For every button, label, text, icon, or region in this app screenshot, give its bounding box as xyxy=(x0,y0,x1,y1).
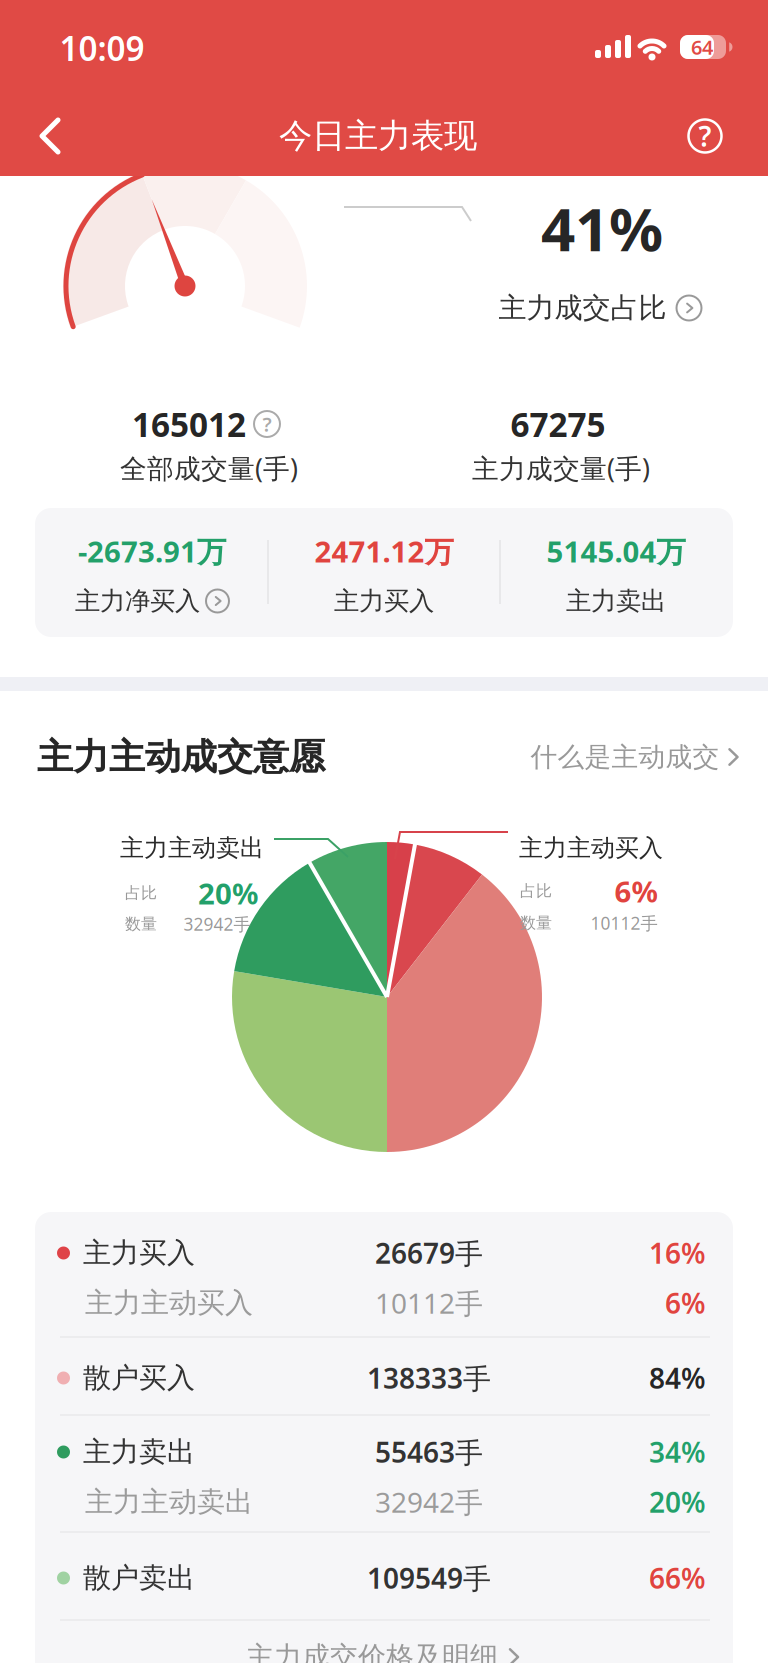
staticText: 32942手 xyxy=(375,1483,483,1521)
staticText: 主力主动卖出 xyxy=(120,833,264,863)
staticText: 散户卖出 xyxy=(83,1561,195,1595)
staticText: 32942手 xyxy=(183,912,250,935)
button[interactable]: 主力净买入 xyxy=(75,585,229,616)
button[interactable]: 主力成交价格及明细 xyxy=(246,1640,522,1663)
button[interactable]: 什么是主动成交 xyxy=(530,741,741,773)
staticText: 26679手 xyxy=(375,1234,483,1272)
staticText: 165012 xyxy=(132,402,246,446)
staticText: 10112手 xyxy=(375,1284,483,1322)
staticText: ? xyxy=(262,411,271,437)
button[interactable]: 帮助 xyxy=(688,119,721,152)
staticText: 6% xyxy=(665,1284,706,1322)
staticText: 67275 xyxy=(510,402,605,446)
staticText: 主力主动买入 xyxy=(85,1286,253,1320)
staticText: 84% xyxy=(649,1359,706,1397)
staticText: 5145.04万 xyxy=(546,531,685,570)
staticText: 占比 xyxy=(520,881,552,901)
staticText: 20% xyxy=(649,1483,706,1521)
staticText: 41% xyxy=(541,188,663,268)
staticText: 主力主动成交意愿 xyxy=(37,735,325,779)
staticText: 主力成交量(手) xyxy=(472,450,650,486)
staticText: 占比 xyxy=(125,883,157,903)
button[interactable]: 返回 xyxy=(32,110,68,162)
staticText: 散户买入 xyxy=(83,1361,195,1395)
staticText: 6% xyxy=(614,871,657,910)
staticText: 66% xyxy=(649,1559,706,1597)
staticText: 主力成交占比 xyxy=(498,291,666,325)
staticText: 什么是主动成交 xyxy=(530,741,719,773)
staticText: ? xyxy=(698,117,711,155)
staticText: 主力主动买入 xyxy=(519,833,663,863)
staticText: 20% xyxy=(198,873,258,912)
staticText: 主力成交价格及明细 xyxy=(246,1640,498,1663)
staticText: 10112手 xyxy=(590,911,657,934)
staticText: 109549手 xyxy=(367,1559,491,1597)
staticText: 数量 xyxy=(520,913,552,933)
staticText: 全部成交量(手) xyxy=(120,450,298,486)
staticText: 55463手 xyxy=(375,1433,483,1471)
staticText: 16% xyxy=(649,1234,706,1272)
staticText: 今日主力表现 xyxy=(279,115,477,156)
staticText: 138333手 xyxy=(367,1359,491,1397)
staticText: 主力卖出 xyxy=(83,1435,195,1469)
staticText: 34% xyxy=(649,1433,706,1471)
staticText: 主力买入 xyxy=(334,585,434,616)
staticText: 64 xyxy=(691,34,713,60)
staticText: 主力净买入 xyxy=(75,585,200,616)
staticText: -2673.91万 xyxy=(78,531,226,570)
staticText: 主力主动卖出 xyxy=(85,1485,253,1519)
staticText: 10:09 xyxy=(59,26,144,70)
staticText: 主力卖出 xyxy=(566,585,666,616)
button[interactable]: 全部成交量说明 xyxy=(254,411,280,437)
button[interactable]: 主力成交占比 xyxy=(498,291,701,325)
staticText: 主力买入 xyxy=(83,1236,195,1270)
staticText: 2471.12万 xyxy=(314,531,453,570)
staticText: 数量 xyxy=(125,914,157,934)
